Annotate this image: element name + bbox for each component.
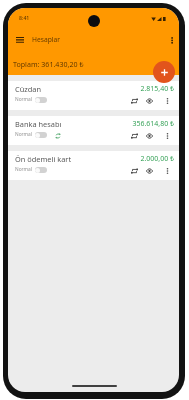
button[interactable]: Show balance: [143, 165, 155, 177]
button[interactable]: Add account: [153, 61, 175, 83]
staticText: Normal: [15, 96, 32, 103]
button[interactable]: Toggle account visibility: [35, 167, 47, 173]
button[interactable]: Show balance: [143, 130, 155, 142]
button[interactable]: Cüzdan: [8, 81, 179, 110]
button[interactable]: Banka hesabı: [8, 116, 179, 145]
staticText: Cüzdan: [15, 84, 41, 94]
button[interactable]: Show balance: [143, 95, 155, 107]
button[interactable]: Open navigation menu: [10, 30, 29, 49]
button[interactable]: Transfer between accounts: [128, 165, 140, 177]
staticText: Ön ödemeli kart: [15, 154, 72, 164]
staticText: Normal: [15, 166, 32, 173]
button[interactable]: Toggle account visibility: [35, 132, 47, 138]
staticText: Banka hesabı: [15, 119, 62, 129]
staticText: 356.614,80 ₺: [8, 119, 174, 129]
button[interactable]: Transfer between accounts: [128, 95, 140, 107]
staticText: 2.000,00 ₺: [8, 154, 174, 164]
button[interactable]: More options: [161, 130, 173, 142]
staticText: Normal: [15, 131, 32, 138]
button[interactable]: Transfer between accounts: [128, 130, 140, 142]
staticText: 8:41: [19, 14, 30, 21]
staticText: Hesaplar: [32, 35, 61, 44]
button[interactable]: More options: [161, 95, 173, 107]
button[interactable]: Ön ödemeli kart: [8, 151, 179, 180]
staticText: Toplam: 361.430,20 ₺: [13, 59, 84, 69]
button[interactable]: Toggle account visibility: [35, 97, 47, 103]
button[interactable]: More options: [161, 165, 173, 177]
staticText: 2.815,40 ₺: [8, 84, 174, 94]
button[interactable]: More options: [162, 31, 179, 50]
